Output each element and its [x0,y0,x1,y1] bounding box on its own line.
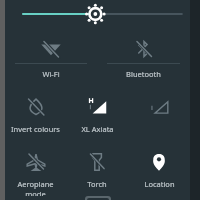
staticText: Location [144,179,175,189]
staticText: Torch [87,179,107,189]
button[interactable]: Torch [66,148,128,189]
staticText: XL Axiata [81,124,114,134]
staticText: Wi-Fi [42,69,60,79]
button[interactable]: Bluetooth [97,35,190,79]
staticText: Invert colours [11,124,60,134]
button[interactable]: Mobile data SIM 2 [128,93,190,124]
staticText: Aeroplane mode [8,179,63,196]
button[interactable]: XL Axiata [66,93,128,134]
button[interactable]: Wi-Fi [5,35,97,79]
button[interactable]: Invert colours [5,93,66,134]
button[interactable]: Aeroplane mode [5,148,66,196]
button[interactable]: Collapse panel [85,196,111,200]
button[interactable]: Brightness [5,6,190,22]
button[interactable]: Location [128,148,190,189]
staticText: Bluetooth [126,69,161,79]
